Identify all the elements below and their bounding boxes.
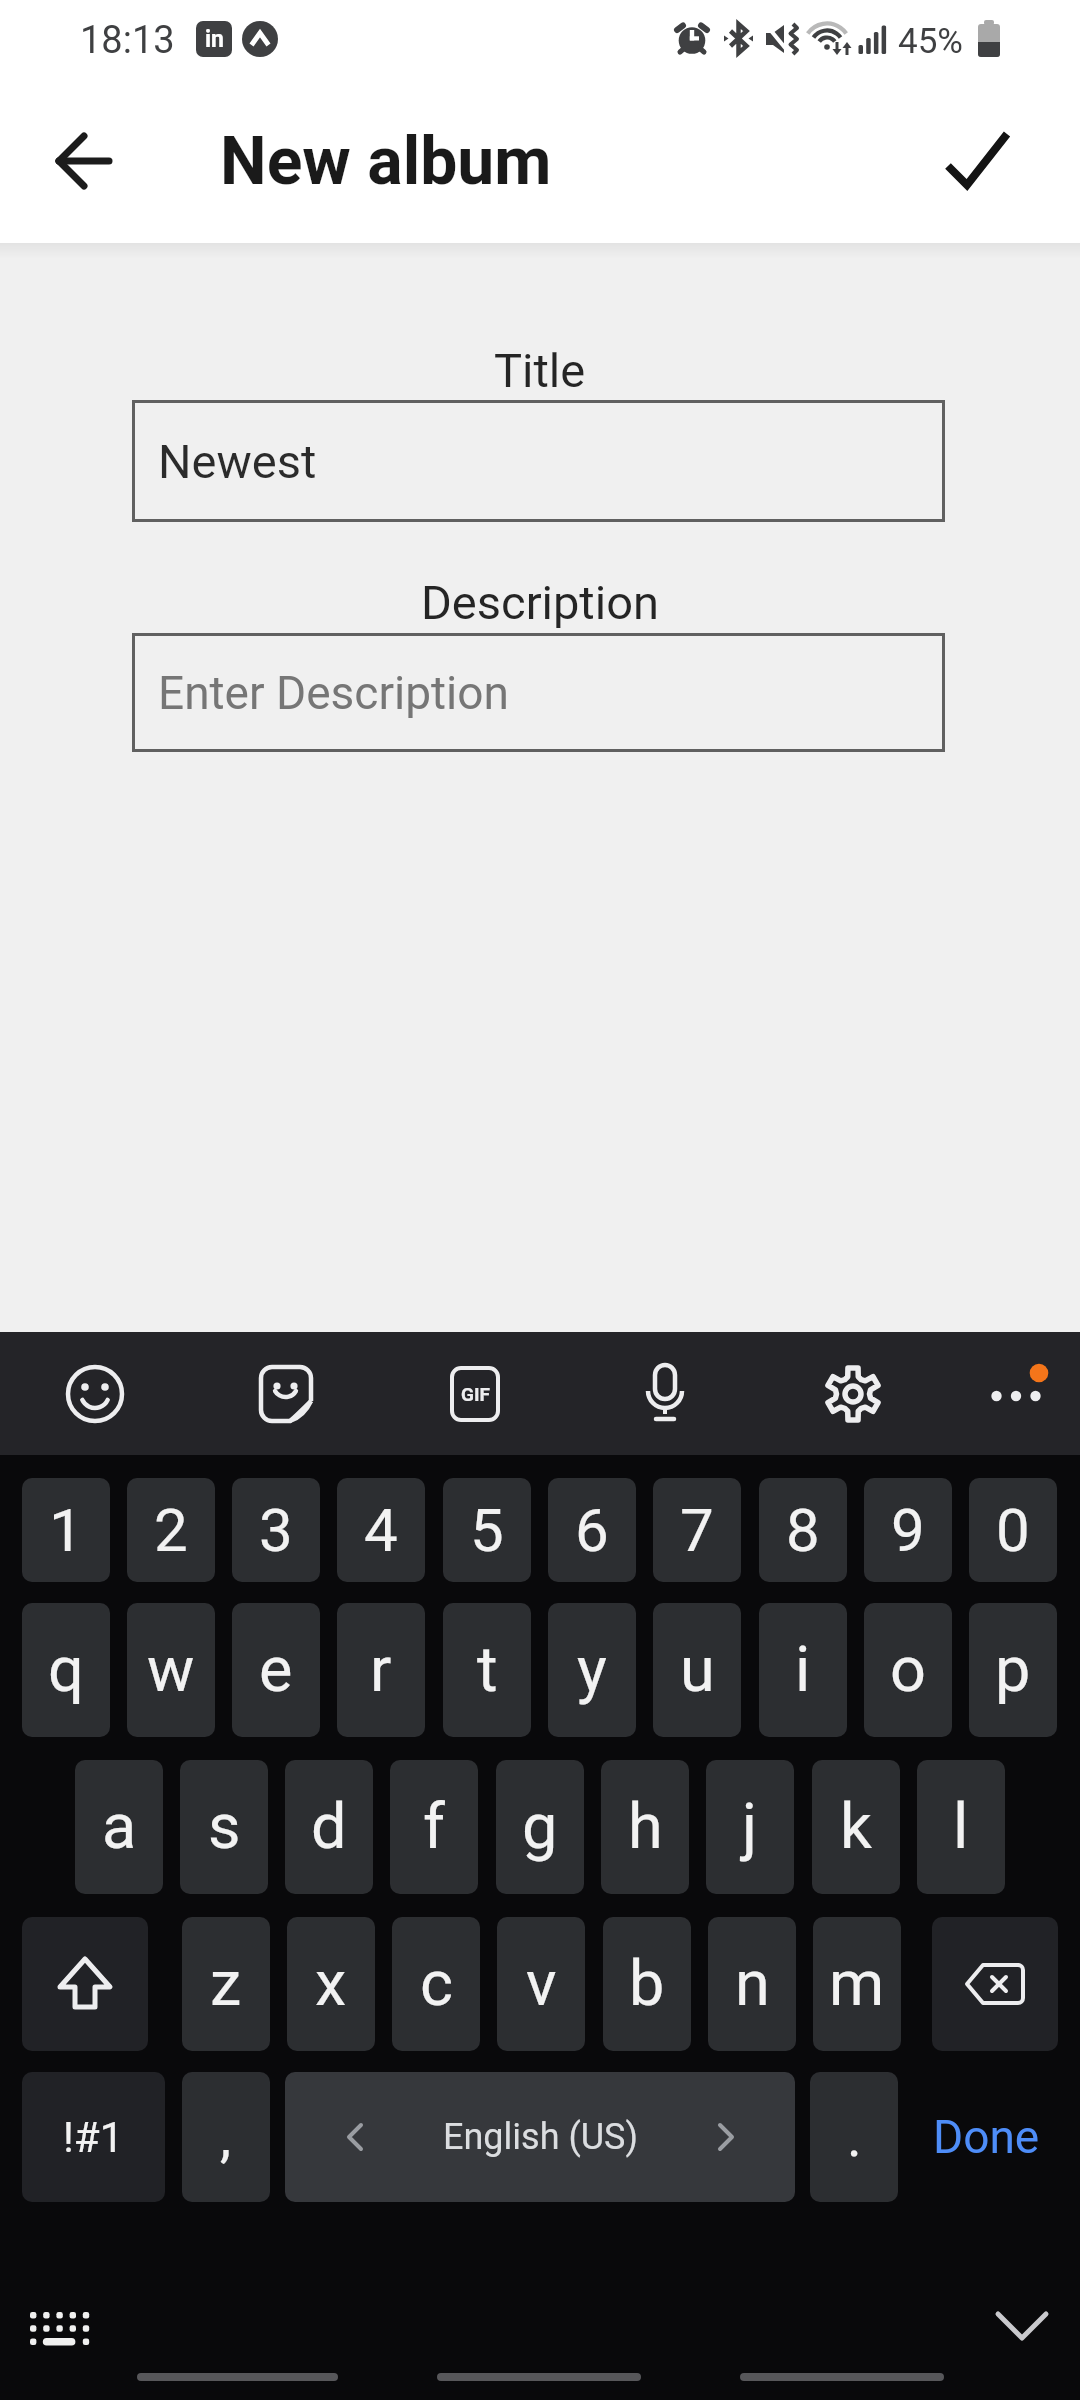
button[interactable]: d [285, 1760, 373, 1894]
button[interactable]: . [810, 2072, 898, 2202]
staticText: x [315, 1947, 347, 2021]
staticText: 2 [154, 1495, 188, 1565]
button[interactable] [55, 1354, 135, 1434]
staticText: o [890, 1633, 926, 1707]
button[interactable] [976, 1354, 1056, 1434]
staticText: k [840, 1790, 872, 1864]
button[interactable]: j [706, 1760, 794, 1894]
button[interactable]: e [232, 1603, 320, 1737]
staticText: t [477, 1633, 498, 1707]
button[interactable]: s [180, 1760, 268, 1894]
button[interactable]: Done [915, 2072, 1058, 2202]
staticText: z [210, 1947, 242, 2021]
staticText: h [628, 1790, 663, 1864]
button[interactable] [22, 1917, 148, 2051]
button[interactable]: y [548, 1603, 636, 1737]
staticText: a [102, 1790, 137, 1864]
button[interactable] [625, 1354, 705, 1434]
staticText: n [735, 1947, 770, 2021]
staticText: u [680, 1633, 715, 1707]
button[interactable]: t [443, 1603, 531, 1737]
button[interactable]: !#1 [22, 2072, 165, 2202]
staticText: Newest [158, 434, 317, 489]
staticText: g [522, 1790, 558, 1864]
button[interactable]: 1 [22, 1478, 110, 1582]
button[interactable]: English (US) [285, 2072, 795, 2202]
button[interactable]: 0 [969, 1478, 1057, 1582]
staticText: 5 [470, 1495, 504, 1565]
staticText: New album [220, 123, 552, 200]
button[interactable]: , [182, 2072, 270, 2202]
button[interactable]: 5 [443, 1478, 531, 1582]
staticText: c [420, 1947, 453, 2021]
staticText: 3 [259, 1495, 293, 1565]
button[interactable]: m [813, 1917, 901, 2051]
button[interactable]: k [812, 1760, 900, 1894]
button[interactable]: h [601, 1760, 689, 1894]
staticText: v [526, 1947, 557, 2021]
button[interactable] [40, 116, 130, 206]
button[interactable]: w [127, 1603, 215, 1737]
staticText: p [995, 1633, 1031, 1707]
staticText: Description [421, 575, 659, 630]
button[interactable]: 8 [759, 1478, 847, 1582]
button[interactable]: GIF [435, 1354, 515, 1434]
staticText: s [208, 1790, 241, 1864]
staticText: 8 [786, 1495, 820, 1565]
staticText: 6 [575, 1495, 609, 1565]
button[interactable]: 4 [337, 1478, 425, 1582]
button[interactable]: c [392, 1917, 480, 2051]
button[interactable]: a [75, 1760, 163, 1894]
button[interactable]: x [287, 1917, 375, 2051]
button[interactable]: Enter Description [132, 633, 945, 752]
staticText: y [577, 1633, 607, 1707]
staticText: j [742, 1790, 758, 1864]
staticText: , [220, 2104, 232, 2170]
staticText: m [829, 1947, 885, 2021]
button[interactable]: o [864, 1603, 952, 1737]
staticText: q [48, 1633, 84, 1707]
staticText: 18:13 [80, 18, 175, 62]
staticText: l [953, 1790, 969, 1864]
staticText: Title [494, 343, 586, 398]
staticText: !#1 [63, 2113, 124, 2162]
button[interactable]: n [708, 1917, 796, 2051]
staticText: w [147, 1633, 195, 1707]
staticText: 1 [49, 1495, 83, 1565]
button[interactable]: 7 [653, 1478, 741, 1582]
button[interactable]: g [496, 1760, 584, 1894]
button[interactable]: f [390, 1760, 478, 1894]
staticText: 0 [996, 1495, 1030, 1565]
button[interactable] [930, 115, 1025, 205]
button[interactable]: b [603, 1917, 691, 2051]
staticText: d [311, 1790, 347, 1864]
button[interactable]: p [969, 1603, 1057, 1737]
button[interactable]: z [182, 1917, 270, 2051]
button[interactable]: i [759, 1603, 847, 1737]
staticText: 45% [898, 21, 963, 62]
button[interactable] [246, 1354, 326, 1434]
button[interactable]: l [917, 1760, 1005, 1894]
button[interactable]: q [22, 1603, 110, 1737]
button[interactable]: v [497, 1917, 585, 2051]
staticText: Enter Description [158, 666, 509, 720]
button[interactable]: u [653, 1603, 741, 1737]
button[interactable] [813, 1354, 893, 1434]
button[interactable]: 6 [548, 1478, 636, 1582]
staticText: f [423, 1790, 445, 1864]
button[interactable]: 9 [864, 1478, 952, 1582]
button[interactable]: r [337, 1603, 425, 1737]
button[interactable] [932, 1917, 1058, 2051]
button[interactable]: 2 [127, 1478, 215, 1582]
staticText: e [259, 1633, 293, 1707]
staticText: in [205, 26, 224, 53]
staticText: 4 [364, 1495, 398, 1565]
staticText: Done [933, 2110, 1040, 2164]
staticText: r [370, 1633, 392, 1707]
staticText: GIF [461, 1383, 490, 1405]
button[interactable]: Newest [132, 400, 945, 522]
staticText: English (US) [443, 2116, 638, 2158]
staticText: b [629, 1947, 665, 2021]
staticText: i [795, 1633, 811, 1707]
button[interactable]: 3 [232, 1478, 320, 1582]
